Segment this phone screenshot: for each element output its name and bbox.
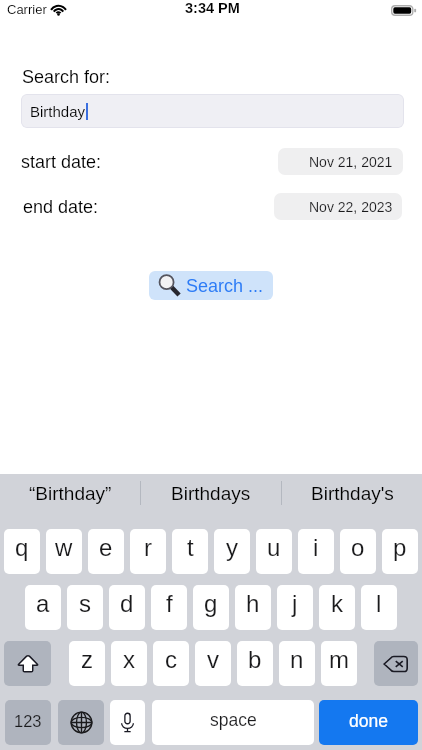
button[interactable]: r — [130, 529, 166, 574]
button[interactable]: Nov 22, 2023 — [274, 193, 402, 220]
staticText: m — [329, 646, 349, 673]
button[interactable]: e — [88, 529, 124, 574]
button[interactable]: Switch keyboard — [58, 700, 104, 745]
button[interactable]: done — [319, 700, 418, 745]
staticText: Nov 22, 2023 — [309, 199, 393, 215]
staticText: g — [204, 590, 218, 617]
button[interactable]: “Birthday” — [0, 474, 140, 512]
staticText: i — [313, 534, 319, 561]
button[interactable]: p — [382, 529, 418, 574]
staticText: s — [79, 590, 91, 617]
button[interactable]: q — [4, 529, 40, 574]
staticText: w — [55, 534, 73, 561]
staticText: 3:34 PM — [185, 0, 240, 16]
button[interactable]: j — [277, 585, 313, 630]
button[interactable]: m — [321, 641, 357, 686]
button[interactable]: c — [153, 641, 189, 686]
staticText: t — [187, 534, 194, 561]
button[interactable]: l — [361, 585, 397, 630]
button[interactable]: Nov 21, 2021 — [278, 148, 403, 175]
staticText: k — [331, 590, 343, 617]
staticText: y — [226, 534, 238, 561]
staticText: l — [376, 590, 382, 617]
button[interactable]: z — [69, 641, 105, 686]
button[interactable]: d — [109, 585, 145, 630]
staticText: Birthday's — [311, 483, 394, 504]
staticText: Nov 21, 2021 — [309, 154, 393, 170]
staticText: z — [81, 646, 93, 673]
staticText: b — [248, 646, 262, 673]
staticText: a — [36, 590, 50, 617]
staticText: p — [393, 534, 407, 561]
button[interactable]: s — [67, 585, 103, 630]
staticText: j — [292, 590, 298, 617]
staticText: 123 — [14, 712, 42, 730]
staticText: n — [290, 646, 304, 673]
staticText: o — [351, 534, 365, 561]
button[interactable]: Birthday — [21, 94, 404, 128]
staticText: d — [120, 590, 134, 617]
staticText: “Birthday” — [29, 483, 112, 504]
button[interactable]: x — [111, 641, 147, 686]
staticText: space — [210, 710, 257, 730]
button[interactable]: Search ... — [149, 271, 273, 300]
button[interactable]: i — [298, 529, 334, 574]
staticText: start date: — [21, 152, 102, 172]
staticText: u — [267, 534, 281, 561]
staticText: done — [349, 711, 388, 731]
button[interactable]: o — [340, 529, 376, 574]
staticText: q — [15, 534, 29, 561]
button[interactable]: f — [151, 585, 187, 630]
button[interactable]: Shift — [4, 641, 51, 686]
staticText: x — [123, 646, 135, 673]
staticText: f — [166, 590, 173, 617]
button[interactable]: t — [172, 529, 208, 574]
staticText: r — [144, 534, 152, 561]
button[interactable]: v — [195, 641, 231, 686]
staticText: end date: — [23, 197, 99, 217]
button[interactable]: Birthday's — [282, 474, 422, 512]
staticText: e — [99, 534, 113, 561]
button[interactable]: a — [25, 585, 61, 630]
button[interactable]: g — [193, 585, 229, 630]
staticText: v — [207, 646, 219, 673]
button[interactable]: Dictation — [110, 700, 145, 745]
button[interactable]: Backspace — [374, 641, 418, 686]
staticText: Birthdays — [171, 483, 251, 504]
staticText: Carrier — [7, 2, 47, 17]
button[interactable]: h — [235, 585, 271, 630]
button[interactable]: y — [214, 529, 250, 574]
staticText: Birthday — [30, 103, 86, 120]
button[interactable]: k — [319, 585, 355, 630]
button[interactable]: space — [152, 700, 314, 745]
staticText: Search for: — [22, 67, 111, 87]
button[interactable]: w — [46, 529, 82, 574]
button[interactable]: u — [256, 529, 292, 574]
button[interactable]: Birthdays — [141, 474, 281, 512]
button[interactable]: n — [279, 641, 315, 686]
button[interactable]: b — [237, 641, 273, 686]
staticText: h — [246, 590, 260, 617]
staticText: c — [165, 646, 177, 673]
staticText: Search ... — [186, 276, 264, 296]
button[interactable]: 123 — [5, 700, 51, 745]
